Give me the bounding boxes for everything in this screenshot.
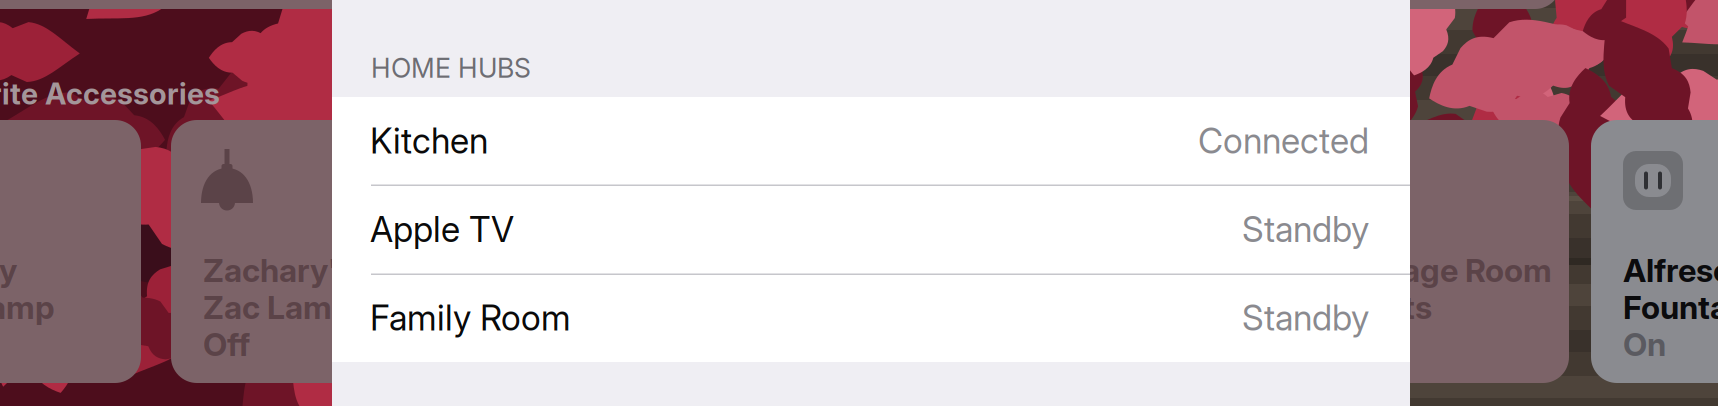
button[interactable]: Kitchen [332,97,1410,185]
staticText: Kitchen [370,120,488,162]
button[interactable]: Family Room [332,274,1410,362]
button[interactable]: Alfresco Fountain, On [1591,120,1718,383]
staticText: Zac Lamp [203,288,352,327]
button[interactable]: Storage Room Lights [1306,120,1569,383]
staticText: Lights [1338,288,1432,327]
staticText: Connected [1198,120,1369,162]
staticText: Apple TV [370,208,514,250]
staticText: Zachary's [203,251,354,290]
button[interactable]: Zachary's Zac Lamp, Off [171,120,434,383]
button[interactable]: Library Arc Lamp, Off [0,120,141,383]
staticText: On [1623,325,1666,364]
staticText: Library [0,251,17,290]
button[interactable]: Apple TV [332,185,1410,274]
staticText: Family Room [370,297,571,339]
staticText: Standby [1242,297,1369,339]
staticText: Favorite Accessories [0,76,220,111]
staticText: Alfresco [1623,251,1718,290]
staticText: Fountain [1623,288,1718,327]
staticText: Off [203,325,250,364]
staticText: HOME HUBS [371,52,531,84]
staticText: Storage Room [1338,251,1552,290]
staticText: Arc Lamp [0,288,55,327]
staticText: Standby [1242,208,1369,250]
